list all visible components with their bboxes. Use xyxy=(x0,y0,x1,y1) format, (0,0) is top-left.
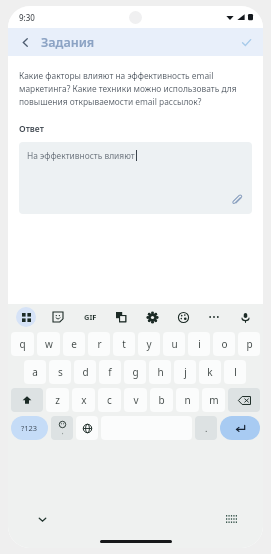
button[interactable]: x xyxy=(72,388,95,412)
button[interactable]: . xyxy=(195,416,217,440)
button[interactable]: На эффективность влияют xyxy=(19,142,252,214)
button[interactable]: k xyxy=(199,360,221,384)
button[interactable]: i xyxy=(188,332,210,356)
button[interactable]: Switch keyboard xyxy=(221,509,241,529)
button[interactable]: Keyboard modes xyxy=(16,307,36,327)
staticText: j xyxy=(184,365,187,379)
staticText: y xyxy=(146,337,152,351)
button[interactable]: f xyxy=(99,360,121,384)
staticText: Задания xyxy=(41,34,95,51)
button[interactable]: Submit xyxy=(235,31,257,53)
staticText: w xyxy=(45,337,53,351)
staticText: p xyxy=(246,337,253,351)
button[interactable]: Emoji and comma xyxy=(51,416,73,440)
button[interactable]: n xyxy=(176,388,199,412)
button[interactable]: a xyxy=(24,360,46,384)
staticText: z xyxy=(55,393,60,407)
staticText: i xyxy=(198,337,201,351)
staticText: GIF xyxy=(84,312,97,322)
staticText: h xyxy=(157,365,164,379)
button[interactable]: ?123 xyxy=(11,416,48,440)
button[interactable]: u xyxy=(163,332,185,356)
button[interactable]: Enter xyxy=(220,416,260,440)
button[interactable]: Backspace xyxy=(228,388,260,412)
button[interactable]: w xyxy=(37,332,60,356)
staticText: f xyxy=(108,365,112,379)
button[interactable]: g xyxy=(124,360,146,384)
staticText: o xyxy=(221,337,228,351)
staticText: c xyxy=(107,393,112,407)
button[interactable]: h xyxy=(149,360,171,384)
staticText: t xyxy=(122,337,126,351)
staticText: m xyxy=(209,393,219,407)
staticText: n xyxy=(184,393,191,407)
staticText: x xyxy=(81,393,87,407)
button[interactable]: o xyxy=(213,332,235,356)
button[interactable]: GIF xyxy=(80,307,100,327)
button[interactable]: Shift xyxy=(11,388,43,412)
button[interactable]: e xyxy=(63,332,85,356)
staticText: s xyxy=(58,365,63,379)
button[interactable]: m xyxy=(202,388,225,412)
staticText: Ответ xyxy=(19,123,44,135)
button[interactable]: j xyxy=(174,360,196,384)
staticText: r xyxy=(97,337,102,351)
staticText: u xyxy=(171,337,178,351)
button[interactable]: Voice input xyxy=(235,307,255,327)
button[interactable]: Translate xyxy=(111,307,131,327)
staticText: ?123 xyxy=(21,423,38,433)
staticText: d xyxy=(82,365,89,379)
staticText: k xyxy=(207,365,213,379)
button[interactable]: Back xyxy=(14,31,36,53)
staticText: l xyxy=(234,365,237,379)
button[interactable]: y xyxy=(138,332,160,356)
staticText: b xyxy=(158,393,165,407)
staticText: v xyxy=(133,393,139,407)
button[interactable]: Stickers xyxy=(48,307,68,327)
button[interactable]: c xyxy=(98,388,121,412)
staticText: e xyxy=(71,337,77,351)
button[interactable]: Hide keyboard xyxy=(32,509,52,529)
staticText: 9:30 xyxy=(19,12,35,23)
button[interactable]: r xyxy=(88,332,110,356)
staticText: a xyxy=(32,365,38,379)
button[interactable]: l xyxy=(224,360,246,384)
button[interactable]: Attach file xyxy=(229,192,245,208)
staticText: Какие факторы влияют на эффективность em… xyxy=(19,70,252,108)
staticText: , xyxy=(62,428,64,436)
staticText: q xyxy=(19,337,26,351)
button[interactable]: Change language xyxy=(76,416,98,440)
button[interactable]: d xyxy=(74,360,96,384)
button[interactable]: z xyxy=(46,388,69,412)
staticText: . xyxy=(205,422,208,434)
button[interactable]: v xyxy=(124,388,147,412)
button[interactable]: More options xyxy=(204,307,224,327)
staticText: На эффективность влияют xyxy=(27,150,135,161)
button[interactable]: q xyxy=(11,332,34,356)
button[interactable]: b xyxy=(150,388,173,412)
button[interactable]: p xyxy=(238,332,260,356)
button[interactable]: t xyxy=(113,332,135,356)
button[interactable]: s xyxy=(49,360,71,384)
button[interactable]: Settings xyxy=(142,307,162,327)
staticText: g xyxy=(132,365,139,379)
button[interactable]: Themes xyxy=(173,307,193,327)
